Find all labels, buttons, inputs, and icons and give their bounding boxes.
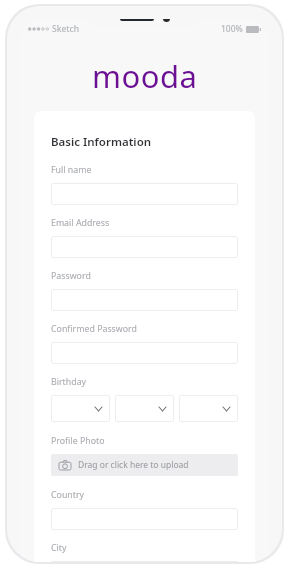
button[interactable]: Drag or click here to upload [51,454,238,476]
staticText: City [51,542,67,554]
staticText: Confirmed Password [51,323,137,335]
staticText: 100% [221,23,243,35]
staticText: Full name [51,164,92,176]
button[interactable]: Select date part [115,395,174,422]
staticText: Birthday [51,376,87,388]
staticText: Basic Information [51,134,152,150]
button[interactable] [51,342,238,364]
staticText: Sketch [52,23,80,35]
button[interactable] [51,236,238,258]
staticText: Profile Photo [51,435,105,447]
button[interactable]: Select date part [179,395,238,422]
button[interactable] [51,289,238,311]
button[interactable] [51,508,238,530]
staticText: Password [51,270,91,282]
button[interactable]: Select date part [51,395,110,422]
button[interactable] [51,183,238,205]
staticText: Drag or click here to upload [78,459,189,471]
staticText: mooda [92,55,198,97]
staticText: Email Address [51,217,110,229]
staticText: Country [51,489,85,501]
